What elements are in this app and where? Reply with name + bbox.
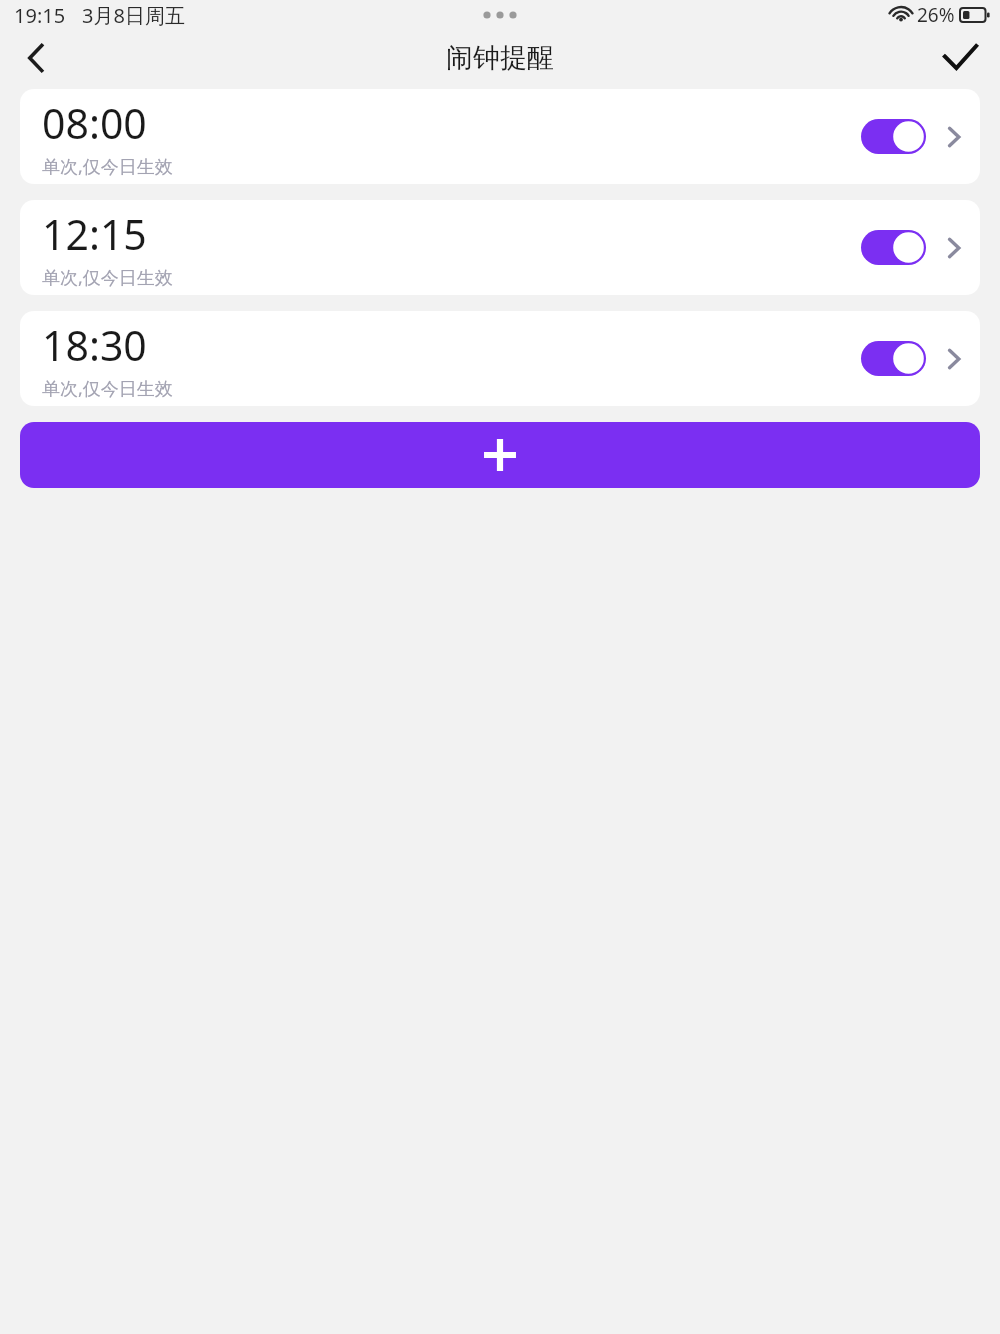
button[interactable]: Back [0, 30, 72, 85]
staticText: 单次,仅今日生效 [42, 265, 173, 290]
button[interactable]: 08:00 [20, 89, 980, 184]
button[interactable]: Toggle alarm [861, 341, 926, 376]
staticText: 18:30 [42, 317, 147, 373]
staticText: 3月8日周五 [82, 2, 185, 29]
staticText: 19:15 [14, 2, 66, 29]
staticText: 12:15 [42, 206, 147, 262]
button[interactable]: Confirm [920, 30, 1000, 85]
button[interactable]: Toggle alarm [861, 230, 926, 265]
button[interactable]: 18:30 [20, 311, 980, 406]
button[interactable]: Add alarm [20, 422, 980, 488]
staticText: 26% [917, 2, 955, 28]
button[interactable]: Open alarm details [936, 337, 972, 381]
button[interactable]: Toggle alarm [861, 119, 926, 154]
button[interactable]: Open alarm details [936, 115, 972, 159]
button[interactable]: 12:15 [20, 200, 980, 295]
staticText: 08:00 [42, 95, 147, 151]
staticText: 闹钟提醒 [446, 41, 554, 75]
button[interactable]: Open alarm details [936, 226, 972, 270]
staticText: 单次,仅今日生效 [42, 376, 173, 401]
staticText: 单次,仅今日生效 [42, 154, 173, 179]
